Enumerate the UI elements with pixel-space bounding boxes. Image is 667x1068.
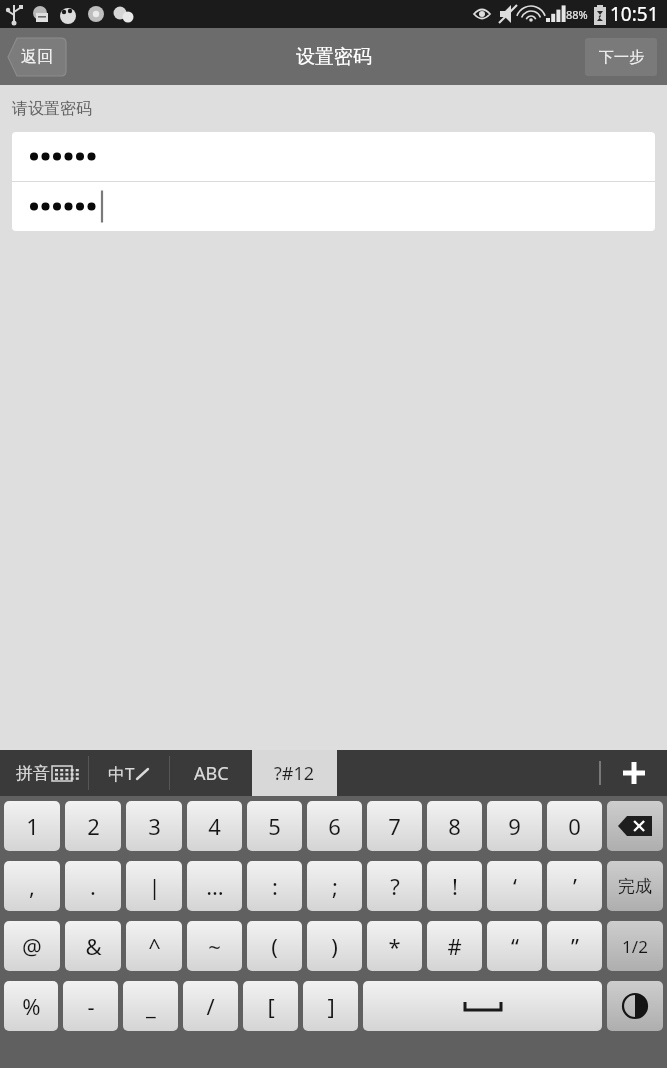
staticText: 4 [208, 811, 221, 841]
staticText: _ [146, 991, 156, 1021]
button[interactable]: ” [547, 921, 602, 971]
button[interactable]: Theme [607, 981, 663, 1031]
button[interactable]: & [65, 921, 121, 971]
staticText: ) [331, 931, 338, 961]
staticText: % [22, 991, 41, 1021]
button[interactable]: , [4, 861, 60, 911]
staticText: ] [327, 991, 335, 1021]
button[interactable]: ’ [547, 861, 602, 911]
button[interactable] [12, 132, 655, 181]
staticText: 返回 [21, 47, 53, 67]
staticText: “ [511, 931, 519, 961]
staticText: ! [452, 871, 458, 901]
button[interactable]: : [247, 861, 302, 911]
staticText: * [388, 931, 401, 961]
staticText: ~ [208, 931, 221, 961]
staticText: 中T [108, 762, 135, 785]
staticText: ? [390, 871, 400, 901]
button[interactable]: % [4, 981, 58, 1031]
staticText: 拼音 [16, 763, 50, 784]
staticText: 7 [388, 811, 401, 841]
staticText: 10:51 [610, 1, 659, 27]
button[interactable]: Backspace [607, 801, 663, 851]
button[interactable]: ^ [126, 921, 182, 971]
button[interactable]: Add [601, 750, 667, 796]
staticText: ; [332, 871, 338, 901]
button[interactable]: 2 [65, 801, 121, 851]
staticText: 6 [328, 811, 341, 841]
button[interactable]: ) [307, 921, 362, 971]
button[interactable]: ? [367, 861, 422, 911]
button[interactable]: 7 [367, 801, 422, 851]
button[interactable]: ; [307, 861, 362, 911]
button[interactable]: _ [123, 981, 178, 1031]
staticText: & [85, 931, 102, 961]
button[interactable]: * [367, 921, 422, 971]
button[interactable]: 6 [307, 801, 362, 851]
button[interactable]: ( [247, 921, 302, 971]
button[interactable]: @ [4, 921, 60, 971]
button[interactable]: 下一步 [585, 38, 657, 76]
staticText: @ [22, 931, 42, 961]
staticText: 5 [268, 811, 281, 841]
button[interactable]: 5 [247, 801, 302, 851]
staticText: . [90, 871, 96, 901]
button[interactable]: - [63, 981, 118, 1031]
staticText: ( [271, 931, 278, 961]
button[interactable]: 1/2 [607, 921, 663, 971]
staticText: / [206, 991, 215, 1021]
button[interactable]: # [427, 921, 482, 971]
staticText: : [272, 871, 278, 901]
button[interactable]: 4 [187, 801, 242, 851]
staticText: - [87, 991, 95, 1021]
staticText: ?#12 [274, 761, 315, 786]
button[interactable]: “ [487, 921, 542, 971]
button[interactable] [12, 182, 655, 231]
button[interactable]: ‘ [487, 861, 542, 911]
staticText: 设置密码 [296, 45, 372, 69]
button[interactable]: ~ [187, 921, 242, 971]
staticText: 8 [448, 811, 461, 841]
button[interactable]: 1 [4, 801, 60, 851]
staticText: ” [571, 931, 579, 961]
button[interactable]: ABC [170, 750, 252, 796]
staticText: 1/2 [622, 935, 648, 958]
staticText: ’ [573, 871, 577, 901]
button[interactable]: 0 [547, 801, 602, 851]
button[interactable]: ! [427, 861, 482, 911]
button[interactable]: Space [363, 981, 602, 1031]
staticText: ABC [194, 761, 229, 786]
button[interactable]: 9 [487, 801, 542, 851]
staticText: | [148, 871, 161, 901]
button[interactable]: 3 [126, 801, 182, 851]
staticText: 1 [26, 811, 39, 841]
button[interactable]: … [187, 861, 242, 911]
button[interactable]: 返回 [8, 38, 66, 76]
staticText: 完成 [618, 876, 652, 897]
button[interactable]: . [65, 861, 121, 911]
staticText: 下一步 [599, 48, 644, 67]
button[interactable]: 中T [89, 750, 169, 796]
staticText: … [206, 871, 224, 901]
staticText: # [447, 931, 462, 961]
staticText: ^ [148, 931, 161, 961]
button[interactable]: 8 [427, 801, 482, 851]
button[interactable]: 拼音 [0, 750, 88, 796]
button[interactable]: / [183, 981, 238, 1031]
button[interactable]: ] [303, 981, 358, 1031]
staticText: 9 [508, 811, 521, 841]
staticText: [ [267, 991, 275, 1021]
button[interactable]: [ [243, 981, 298, 1031]
button[interactable]: | [126, 861, 182, 911]
staticText: ‘ [513, 871, 517, 901]
staticText: , [29, 871, 35, 901]
staticText: 请设置密码 [12, 99, 92, 119]
staticText: 0 [568, 811, 581, 841]
button[interactable]: 完成 [607, 861, 663, 911]
staticText: 88% [566, 7, 588, 22]
staticText: 2 [87, 811, 100, 841]
staticText: 3 [148, 811, 161, 841]
button[interactable]: ?#12 [252, 750, 337, 796]
